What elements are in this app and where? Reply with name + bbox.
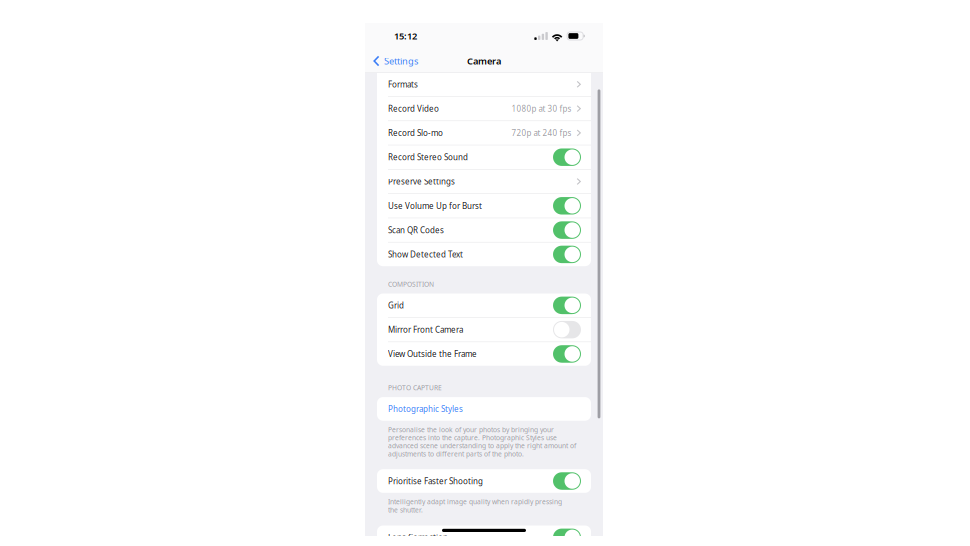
- button[interactable]: View Outside the Frame: [377, 342, 591, 366]
- staticText: Personalise the look of your photos by b…: [388, 425, 554, 434]
- button[interactable]: Lens Correction: [377, 525, 591, 546]
- button[interactable]: Record Slo-mo: [377, 121, 591, 145]
- button[interactable]: Record Stereo Sound: [377, 145, 591, 169]
- staticText: Scan QR Codes: [388, 225, 444, 235]
- staticText: advanced scene understanding to apply th…: [388, 441, 576, 450]
- staticText: Lens Correction: [388, 532, 448, 543]
- staticText: Settings: [384, 55, 418, 67]
- staticText: Formats: [388, 79, 418, 90]
- staticText: Record Video: [388, 103, 439, 114]
- button[interactable]: Show Detected Text: [377, 243, 591, 266]
- staticText: Grid: [388, 300, 404, 311]
- staticText: Record Slo-mo: [388, 128, 443, 138]
- staticText: 1080p at 30 fps: [511, 103, 571, 114]
- staticText: COMPOSITION: [388, 280, 434, 289]
- staticText: Use Volume Up for Burst: [388, 200, 482, 211]
- button[interactable]: Preserve Settings: [377, 170, 591, 193]
- button[interactable]: Settings: [365, 51, 418, 71]
- staticText: the shutter.: [388, 505, 423, 514]
- button[interactable]: Prioritise Faster Shooting: [377, 469, 591, 493]
- staticText: Preserve Settings: [388, 176, 455, 187]
- staticText: preferences into the capture. Photograph…: [388, 433, 557, 442]
- staticText: Photographic Styles: [388, 404, 463, 414]
- staticText: Mirror Front Camera: [388, 324, 463, 335]
- button[interactable]: Formats: [377, 72, 591, 96]
- button[interactable]: Grid: [377, 294, 591, 317]
- staticText: View Outside the Frame: [388, 349, 477, 359]
- staticText: Prioritise Faster Shooting: [388, 476, 483, 486]
- staticText: 15:12: [394, 30, 417, 42]
- button[interactable]: Use Volume Up for Burst: [377, 194, 591, 218]
- staticText: Record Stereo Sound: [388, 152, 468, 162]
- staticText: PHOTO CAPTURE: [388, 383, 442, 392]
- button[interactable]: Scan QR Codes: [377, 218, 591, 242]
- staticText: Show Detected Text: [388, 249, 463, 260]
- button[interactable]: Mirror Front Camera: [377, 318, 591, 341]
- button[interactable]: Record Video: [377, 97, 591, 120]
- staticText: Camera: [467, 55, 501, 67]
- staticText: adjustments to different parts of the ph…: [388, 449, 524, 458]
- staticText: Intelligently adapt image quality when r…: [388, 497, 562, 506]
- button[interactable]: Photographic Styles: [377, 397, 591, 421]
- staticText: 720p at 240 fps: [511, 128, 571, 138]
